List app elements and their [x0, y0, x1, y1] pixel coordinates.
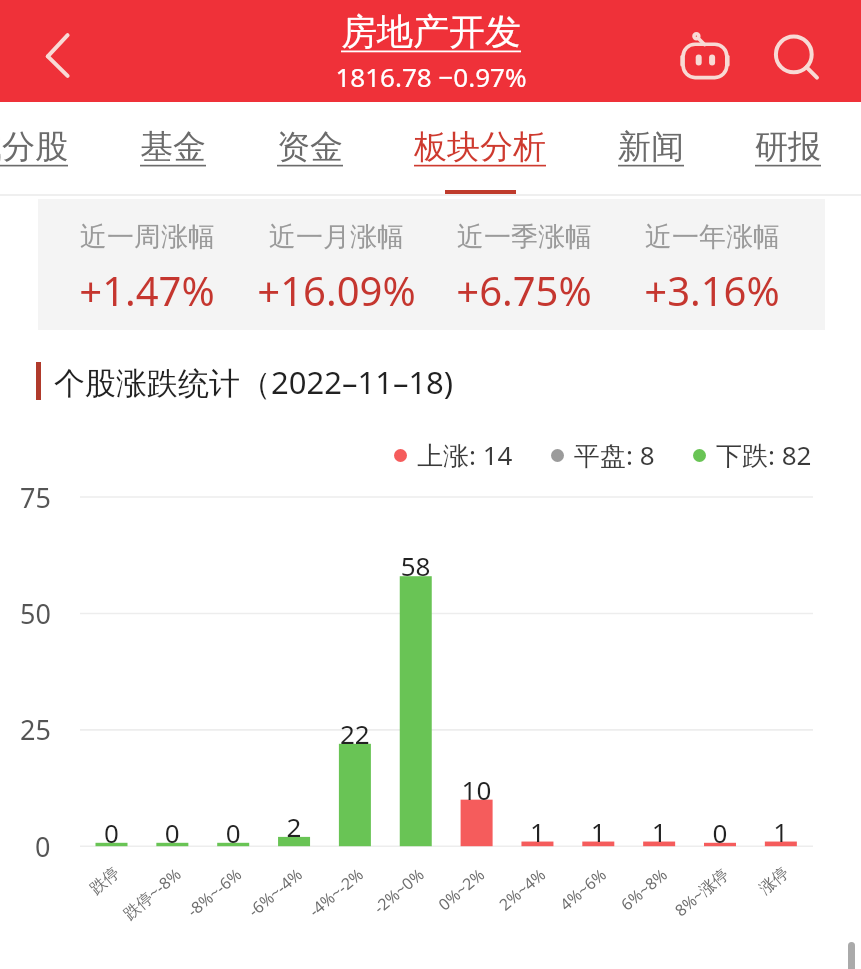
- staticText: 平盘: 8: [574, 437, 655, 473]
- staticText: 板块分析: [414, 126, 546, 168]
- staticText: 近一周涨幅: [80, 220, 215, 254]
- button[interactable]: 近一月涨幅: [241, 199, 431, 330]
- staticText: +1.47%: [79, 263, 215, 317]
- button[interactable]: AI assistant: [665, 20, 729, 84]
- button[interactable]: 近一周涨幅: [52, 199, 242, 330]
- button[interactable]: 基金: [118, 102, 228, 194]
- staticText: 房地产开发: [341, 9, 521, 54]
- staticText: 近一季涨幅: [457, 220, 592, 254]
- button[interactable]: 资金: [255, 102, 365, 194]
- staticText: 资金: [277, 126, 343, 168]
- button[interactable]: 下跌: 82: [693, 437, 812, 473]
- button[interactable]: 成分股: [0, 102, 73, 194]
- staticText: 上涨: 14: [417, 437, 513, 473]
- staticText: 基金: [140, 126, 206, 168]
- button[interactable]: 近一季涨幅: [429, 199, 619, 330]
- staticText: 近一月涨幅: [269, 220, 404, 254]
- staticText: 个股涨跌统计（2022–11–18): [54, 361, 454, 403]
- button[interactable]: 板块分析: [406, 102, 554, 194]
- button[interactable]: 研报: [733, 102, 843, 194]
- staticText: +3.16%: [644, 263, 780, 317]
- staticText: +6.75%: [456, 263, 592, 317]
- button[interactable]: 平盘: 8: [551, 437, 655, 473]
- button[interactable]: 上涨: 14: [394, 437, 513, 473]
- button[interactable]: Search: [755, 20, 819, 84]
- staticText: 新闻: [618, 126, 684, 168]
- staticText: 1816.78 −0.97%: [335, 59, 527, 94]
- staticText: 成分股: [0, 126, 68, 168]
- button[interactable]: Back: [25, 20, 89, 84]
- button[interactable]: 新闻: [596, 102, 706, 194]
- staticText: +16.09%: [257, 263, 416, 317]
- staticText: 研报: [755, 126, 821, 168]
- staticText: 下跌: 82: [716, 437, 812, 473]
- button[interactable]: 近一年涨幅: [617, 199, 807, 330]
- staticText: 近一年涨幅: [645, 220, 780, 254]
